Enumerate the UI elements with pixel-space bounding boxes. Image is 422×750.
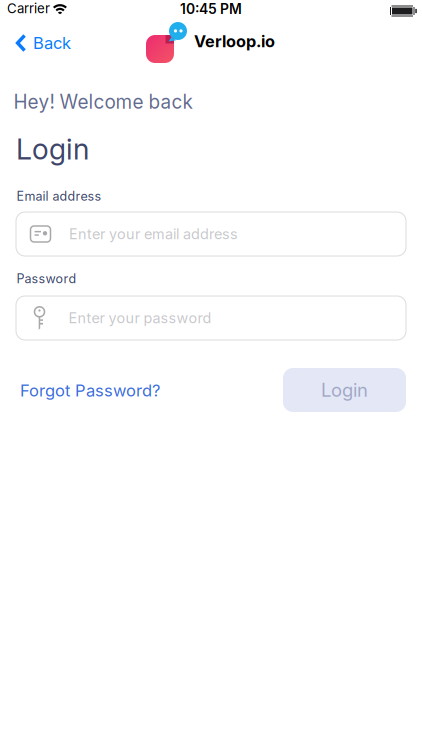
button[interactable]: Enter your email address	[16, 212, 406, 256]
staticText: Login	[16, 132, 89, 166]
staticText: Enter your email address	[69, 225, 238, 243]
button[interactable]: Back	[0, 26, 79, 60]
staticText: Forgot Password?	[20, 380, 160, 400]
staticText: 10:45 PM	[180, 1, 242, 17]
staticText: Hey! Welcome back	[13, 90, 192, 113]
staticText: Email address	[16, 188, 101, 204]
button[interactable]: Enter your password	[16, 296, 406, 340]
staticText: Login	[321, 379, 368, 401]
staticText: Enter your password	[68, 309, 211, 327]
button[interactable]: Login	[283, 368, 406, 412]
button[interactable]: Forgot Password?	[16, 376, 164, 404]
staticText: Carrier	[7, 0, 50, 16]
staticText: Verloop.io	[194, 31, 275, 51]
staticText: Password	[16, 271, 76, 286]
staticText: Back	[33, 33, 71, 53]
